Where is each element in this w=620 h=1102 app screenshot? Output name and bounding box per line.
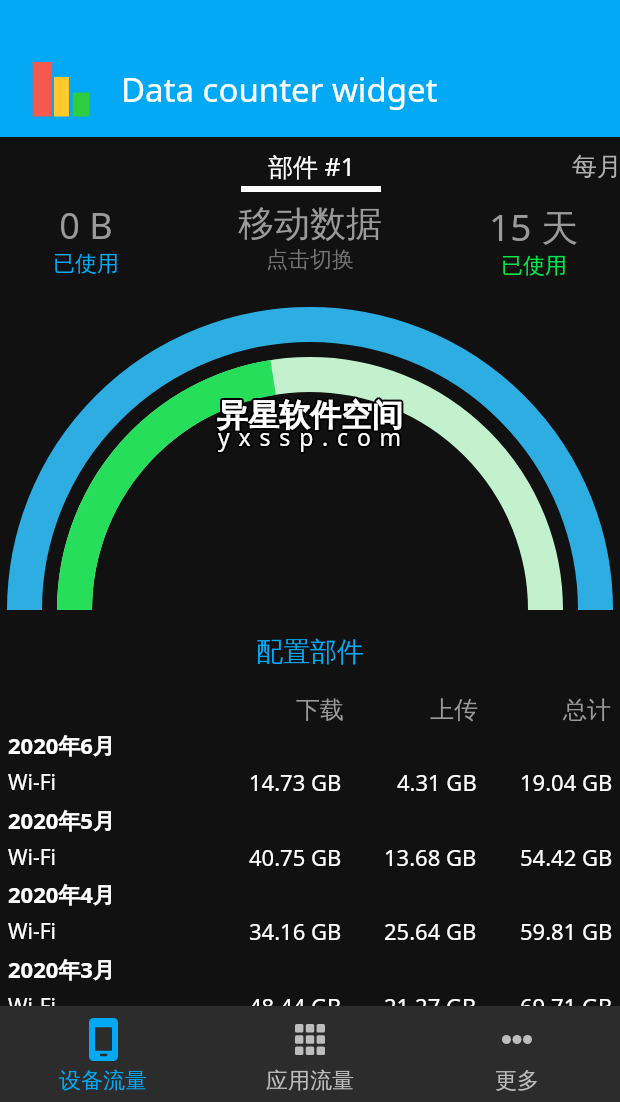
staticText: 下载	[296, 695, 344, 725]
staticText: 异星软件空间	[218, 398, 404, 437]
staticText: 40.75 GB	[249, 842, 342, 872]
staticText: Wi-Fi	[8, 843, 57, 872]
button[interactable]: App data	[206, 1006, 413, 1102]
button[interactable]: 配置部件	[230, 632, 390, 672]
staticText: 59.81 GB	[520, 916, 613, 946]
staticText: 2020年5月	[8, 805, 115, 835]
staticText: 异星软件空间	[215, 396, 401, 435]
staticText: yxssp.com	[218, 422, 410, 453]
staticText: 异星软件空间	[219, 397, 405, 436]
staticText: 14.73 GB	[249, 767, 342, 797]
staticText: 异星软件空间	[218, 396, 404, 435]
staticText: 4.31 GB	[397, 767, 477, 797]
staticText: Data counter widget	[121, 67, 438, 112]
staticText: 异星软件空间	[216, 394, 402, 433]
staticText: 48.44 GB	[249, 991, 342, 1021]
staticText: yxssp.com	[216, 420, 408, 451]
staticText: 34.16 GB	[249, 916, 342, 946]
staticText: 异星软件空间	[219, 395, 405, 434]
staticText: 异星软件空间	[217, 398, 403, 437]
staticText: 设备流量	[59, 1067, 147, 1095]
staticText: 每月	[572, 151, 620, 182]
staticText: yxssp.com	[219, 423, 411, 454]
button[interactable]: 2020年4月	[0, 876, 620, 912]
staticText: 应用流量	[266, 1067, 354, 1095]
other: More	[502, 1035, 532, 1044]
staticText: Wi-Fi	[8, 768, 57, 797]
staticText: 2020年4月	[8, 879, 115, 909]
staticText: 0 B	[59, 201, 113, 250]
staticText: 21.27 GB	[384, 991, 477, 1021]
staticText: yxssp.com	[219, 420, 411, 451]
staticText: 移动数据	[238, 201, 382, 246]
staticText: 异星软件空间	[217, 394, 403, 433]
button[interactable]: Wi-Fi	[0, 913, 620, 949]
button[interactable]: 部件 #1	[241, 146, 381, 186]
staticText: 异星软件空间	[219, 396, 405, 435]
staticText: 异星软件空间	[216, 398, 402, 437]
staticText: yxssp.com	[220, 422, 412, 453]
button[interactable]: 15 天	[423, 201, 620, 286]
staticText: yxssp.com	[216, 421, 408, 452]
staticText: yxssp.com	[217, 423, 409, 454]
staticText: 异星软件空间	[217, 396, 403, 435]
staticText: yxssp.com	[217, 422, 409, 453]
button[interactable]: 2020年6月	[0, 727, 620, 763]
staticText: yxssp.com	[219, 422, 411, 453]
staticText: 13.68 GB	[384, 842, 477, 872]
staticText: 25.64 GB	[384, 916, 477, 946]
staticText: 异星软件空间	[216, 396, 402, 435]
staticText: yxssp.com	[218, 423, 410, 454]
staticText: yxssp.com	[217, 420, 409, 451]
staticText: 点击切换	[266, 246, 354, 274]
staticText: Wi-Fi	[8, 917, 57, 946]
staticText: 部件 #1	[268, 149, 355, 183]
staticText: 54.42 GB	[520, 842, 613, 872]
button[interactable]: More	[413, 1006, 620, 1102]
button[interactable]: 每月	[560, 146, 620, 186]
staticText: 2020年3月	[8, 954, 115, 984]
staticText: 总计	[563, 695, 611, 725]
button[interactable]: Wi-Fi	[0, 988, 620, 1024]
staticText: yxssp.com	[220, 421, 412, 452]
other: Device data	[89, 1018, 118, 1061]
staticText: 已使用	[501, 252, 567, 280]
staticText: yxssp.com	[216, 422, 408, 453]
staticText: yxssp.com	[218, 421, 410, 452]
button[interactable]: Device data	[0, 1006, 206, 1102]
staticText: 69.71 GB	[520, 991, 613, 1021]
staticText: Wi-Fi	[8, 992, 57, 1021]
staticText: yxssp.com	[217, 421, 409, 452]
staticText: yxssp.com	[219, 419, 411, 450]
staticText: 15 天	[489, 201, 578, 252]
staticText: yxssp.com	[218, 419, 410, 450]
staticText: 2020年6月	[8, 730, 115, 760]
staticText: 异星软件空间	[216, 397, 402, 436]
staticText: 已使用	[53, 250, 119, 278]
button[interactable]: 0 B	[0, 201, 196, 286]
button[interactable]: 2020年5月	[0, 802, 620, 838]
staticText: yxssp.com	[219, 421, 411, 452]
staticText: yxssp.com	[220, 420, 412, 451]
staticText: 异星软件空间	[216, 395, 402, 434]
staticText: yxssp.com	[217, 419, 409, 450]
staticText: 异星软件空间	[218, 395, 404, 434]
staticText: 异星软件空间	[218, 394, 404, 433]
staticText: 异星软件空间	[218, 397, 404, 436]
staticText: 更多	[495, 1067, 539, 1095]
staticText: yxssp.com	[218, 420, 410, 451]
staticText: 19.04 GB	[520, 767, 613, 797]
staticText: 异星软件空间	[215, 397, 401, 436]
staticText: 配置部件	[256, 635, 364, 669]
staticText: 异星软件空间	[217, 395, 403, 434]
staticText: 异星软件空间	[215, 395, 401, 434]
button[interactable]: Wi-Fi	[0, 839, 620, 875]
staticText: 上传	[430, 695, 478, 725]
staticText: 异星软件空间	[217, 397, 403, 436]
other: App data	[295, 1024, 325, 1055]
button[interactable]: 移动数据	[200, 201, 420, 286]
button[interactable]: Wi-Fi	[0, 764, 620, 800]
button[interactable]: 2020年3月	[0, 951, 620, 987]
